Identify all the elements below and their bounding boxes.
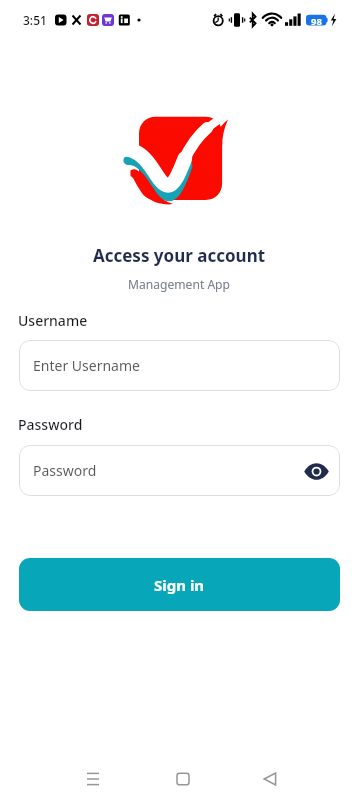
staticText: Password (18, 415, 83, 434)
button[interactable]: Sign in (19, 558, 340, 611)
button[interactable]: Home (159, 762, 207, 796)
staticText: Username (18, 311, 88, 330)
staticText: 3:51 (23, 12, 47, 28)
staticText: Sign in (154, 575, 205, 595)
button[interactable]: Enter Username (19, 340, 340, 391)
staticText: Management App (0, 276, 358, 292)
button[interactable]: Back (246, 762, 294, 796)
staticText: Access your account (0, 244, 358, 267)
button[interactable]: Show password (302, 457, 330, 485)
staticText: Enter Username (33, 356, 140, 375)
button[interactable]: Recent apps (69, 762, 117, 796)
button[interactable]: Password (19, 445, 340, 496)
staticText: 98 (311, 15, 322, 26)
staticText: Password (33, 461, 97, 480)
